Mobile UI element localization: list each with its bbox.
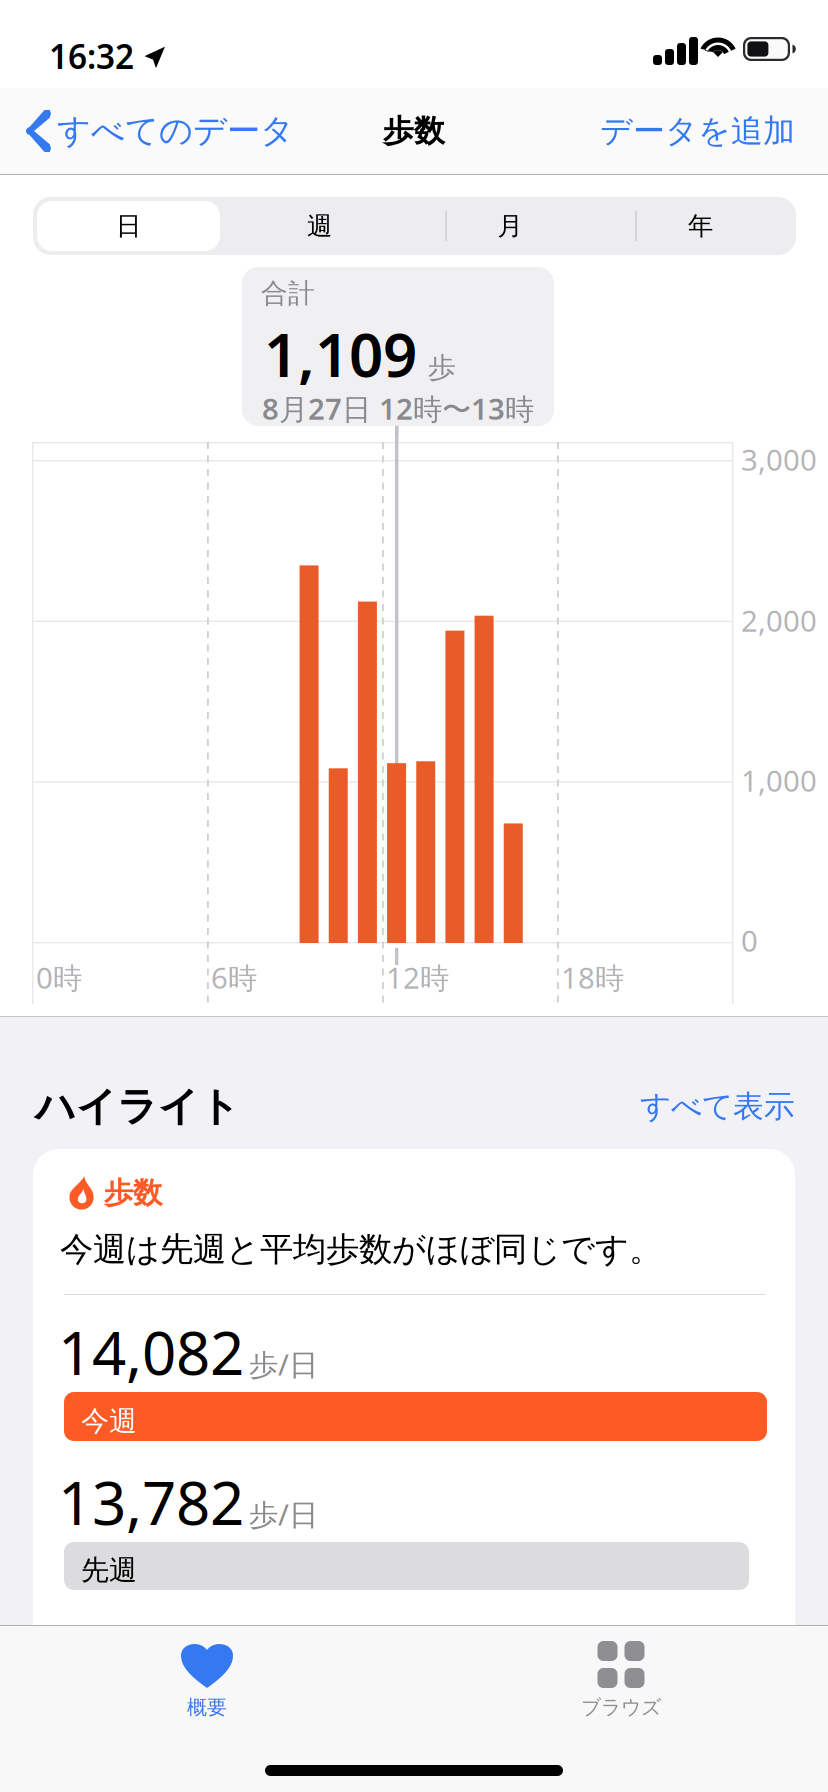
staticText: 月	[497, 210, 522, 241]
staticText: ハイライト	[35, 1082, 240, 1131]
staticText: データを追加	[600, 111, 795, 151]
staticText: 歩数	[383, 112, 445, 150]
staticText: 概要	[187, 1695, 227, 1720]
staticText: 日	[116, 210, 141, 241]
staticText: 歩/日	[249, 1495, 318, 1534]
button[interactable]: 日	[33, 197, 224, 255]
staticText: すべてのデータ	[57, 110, 294, 151]
staticText: 0	[741, 921, 758, 960]
staticText: 先週	[81, 1553, 137, 1587]
staticText: 12時	[386, 958, 449, 997]
button[interactable]: 週	[224, 197, 415, 255]
staticText: すべて表示	[640, 1088, 795, 1125]
staticText: 合計	[261, 277, 315, 310]
button[interactable]: すべてのデータ	[0, 88, 310, 174]
button[interactable]: データを追加	[584, 88, 828, 174]
button[interactable]: 年	[605, 197, 796, 255]
button[interactable]: 月	[415, 197, 605, 255]
staticText: 年	[688, 210, 713, 241]
button[interactable]: すべて表示	[640, 1088, 795, 1125]
staticText: 13,782	[58, 1462, 244, 1542]
staticText: 0時	[36, 958, 82, 997]
staticText: 14,082	[58, 1312, 244, 1392]
staticText: ブラウズ	[581, 1695, 661, 1720]
staticText: 歩数	[104, 1175, 162, 1211]
staticText: 今週	[81, 1404, 137, 1438]
staticText: 歩	[428, 351, 456, 385]
staticText: 2,000	[741, 601, 817, 640]
staticText: 6時	[211, 958, 257, 997]
staticText: 1,000	[741, 761, 817, 800]
staticText: 16:32	[49, 34, 134, 78]
staticText: 3,000	[741, 440, 817, 479]
staticText: 8月27日 12時〜13時	[262, 389, 534, 428]
staticText: 今週は先週と平均歩数がほぼ同じです。	[60, 1229, 662, 1270]
staticText: 週	[307, 210, 332, 241]
button[interactable]: 概要	[0, 1625, 414, 1735]
staticText: 1,109	[264, 314, 417, 394]
staticText: 18時	[561, 958, 624, 997]
button[interactable]: ブラウズ	[414, 1625, 828, 1735]
staticText: 歩/日	[249, 1345, 318, 1384]
